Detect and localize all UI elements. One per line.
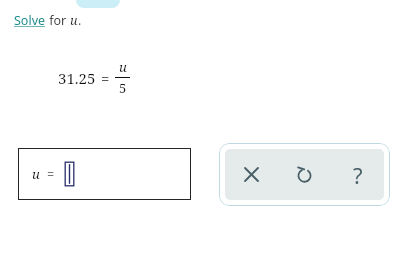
staticText: u [70, 12, 78, 29]
staticText: Solve [14, 12, 46, 29]
staticText: 31.25 [58, 68, 96, 88]
staticText: for [46, 12, 70, 29]
staticText: = [47, 165, 55, 183]
button[interactable]: Solve [14, 12, 46, 29]
button[interactable]: Undo [278, 149, 331, 200]
button[interactable]: u [18, 148, 191, 200]
staticText: 5 [119, 79, 127, 97]
staticText: = [101, 68, 110, 88]
staticText: u [119, 58, 127, 76]
button[interactable]: Clear [225, 149, 278, 200]
staticText: ? [353, 160, 363, 190]
staticText: u [32, 165, 40, 183]
button[interactable]: Help [331, 149, 384, 200]
staticText: . [78, 12, 82, 29]
